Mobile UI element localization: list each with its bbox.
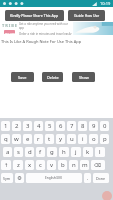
button[interactable]: 5 [45, 121, 54, 131]
staticText: 7 [70, 122, 74, 130]
button[interactable]: a [3, 147, 12, 157]
staticText: f [39, 148, 42, 156]
button[interactable]: 1 [1, 121, 10, 131]
button[interactable]: Done [93, 173, 109, 183]
staticText: u [70, 135, 74, 143]
button[interactable]: Buy Now [4, 30, 15, 34]
staticText: 9 [92, 122, 96, 130]
staticText: x [28, 161, 32, 169]
staticText: w [14, 135, 19, 143]
staticText: l [99, 148, 101, 156]
staticText: 0 [103, 122, 107, 130]
staticText: ⚙ [17, 175, 22, 181]
staticText: 8 [81, 122, 85, 130]
button[interactable]: w [12, 134, 21, 144]
staticText: a [6, 148, 10, 156]
button[interactable]: 4 [34, 121, 43, 131]
button[interactable]: 2 [12, 121, 21, 131]
button[interactable]: c [36, 160, 45, 170]
staticText: 4 [37, 122, 41, 130]
staticText: g [50, 148, 54, 156]
staticText: s [17, 148, 20, 156]
button[interactable]: g [47, 147, 57, 157]
staticText: Order a ride in minutes and travel easil… [19, 32, 72, 35]
button[interactable]: ↑ [1, 160, 11, 170]
button[interactable]: f [36, 147, 45, 157]
staticText: Kindly Please Share This App [10, 13, 59, 18]
staticText: p [103, 135, 107, 143]
button[interactable]: i [78, 134, 87, 144]
staticText: t [48, 135, 51, 143]
staticText: v [50, 161, 54, 169]
button[interactable]: m [80, 160, 89, 170]
staticText: English(UK) [45, 176, 63, 180]
button[interactable]: r [34, 134, 43, 144]
staticText: Show [79, 75, 89, 80]
staticText: k [86, 148, 90, 156]
button[interactable]: ⌫ [91, 160, 105, 170]
button[interactable]: Sym [1, 173, 13, 183]
staticText: i [82, 135, 84, 143]
button[interactable]: . [84, 173, 91, 183]
staticText: n [72, 161, 76, 169]
button[interactable]: y [56, 134, 65, 144]
staticText: 6 [59, 122, 63, 130]
button[interactable]: p [100, 134, 109, 144]
button[interactable]: z [13, 160, 23, 170]
staticText: h [62, 148, 66, 156]
staticText: ⌫ [94, 162, 102, 168]
button[interactable]: l [95, 147, 105, 157]
button[interactable]: s [14, 147, 23, 157]
staticText: r [37, 135, 40, 143]
staticText: Guide How Use [74, 13, 100, 18]
button[interactable]: u [67, 134, 76, 144]
button[interactable]: 8 [78, 121, 87, 131]
staticText: Done [96, 176, 106, 181]
button[interactable]: 7 [67, 121, 76, 131]
staticText: q [4, 135, 8, 143]
staticText: m [82, 161, 88, 169]
button[interactable]: e [23, 134, 32, 144]
button[interactable]: n [69, 160, 78, 170]
staticText: TRIBE [2, 23, 18, 28]
button[interactable]: 6 [56, 121, 65, 131]
staticText: This Is Like A Rough Note For Use This A… [1, 39, 82, 44]
button[interactable]: Guide How Use [68, 10, 105, 21]
staticText: 10:19 [100, 1, 111, 6]
button[interactable]: Delete [42, 72, 63, 82]
staticText: o [92, 135, 96, 143]
staticText: Buy Now [5, 31, 15, 34]
staticText: 1 [4, 122, 8, 130]
staticText: Get a ride anytime you need with our app [19, 22, 72, 30]
button[interactable]: j [71, 147, 81, 157]
button[interactable]: 3 [23, 121, 32, 131]
staticText: Sym [3, 176, 11, 181]
button[interactable]: b [58, 160, 67, 170]
staticText: 3 [26, 122, 30, 130]
staticText: 2 [15, 122, 19, 130]
staticText: z [17, 161, 20, 169]
button[interactable]: 9 [89, 121, 98, 131]
button[interactable]: o [89, 134, 98, 144]
staticText: Delete [47, 75, 59, 80]
button[interactable]: 0 [100, 121, 109, 131]
staticText: d [28, 148, 32, 156]
button[interactable]: k [83, 147, 93, 157]
button[interactable]: d [25, 147, 34, 157]
button[interactable]: x [25, 160, 34, 170]
button[interactable]: h [59, 147, 69, 157]
button[interactable]: t [45, 134, 54, 144]
button[interactable]: q [1, 134, 10, 144]
staticText: e [26, 135, 30, 143]
button[interactable]: Save [11, 72, 34, 82]
button[interactable]: v [47, 160, 56, 170]
staticText: j [75, 148, 77, 156]
staticText: y [59, 135, 63, 143]
staticText: ↑ [4, 162, 9, 168]
staticText: b [61, 161, 65, 169]
button[interactable]: Show [72, 72, 95, 82]
button[interactable]: ⚙ [15, 173, 24, 183]
staticText: 5 [48, 122, 52, 130]
button[interactable]: Kindly Please Share This App [5, 10, 64, 21]
button[interactable]: English(UK) [26, 173, 82, 183]
